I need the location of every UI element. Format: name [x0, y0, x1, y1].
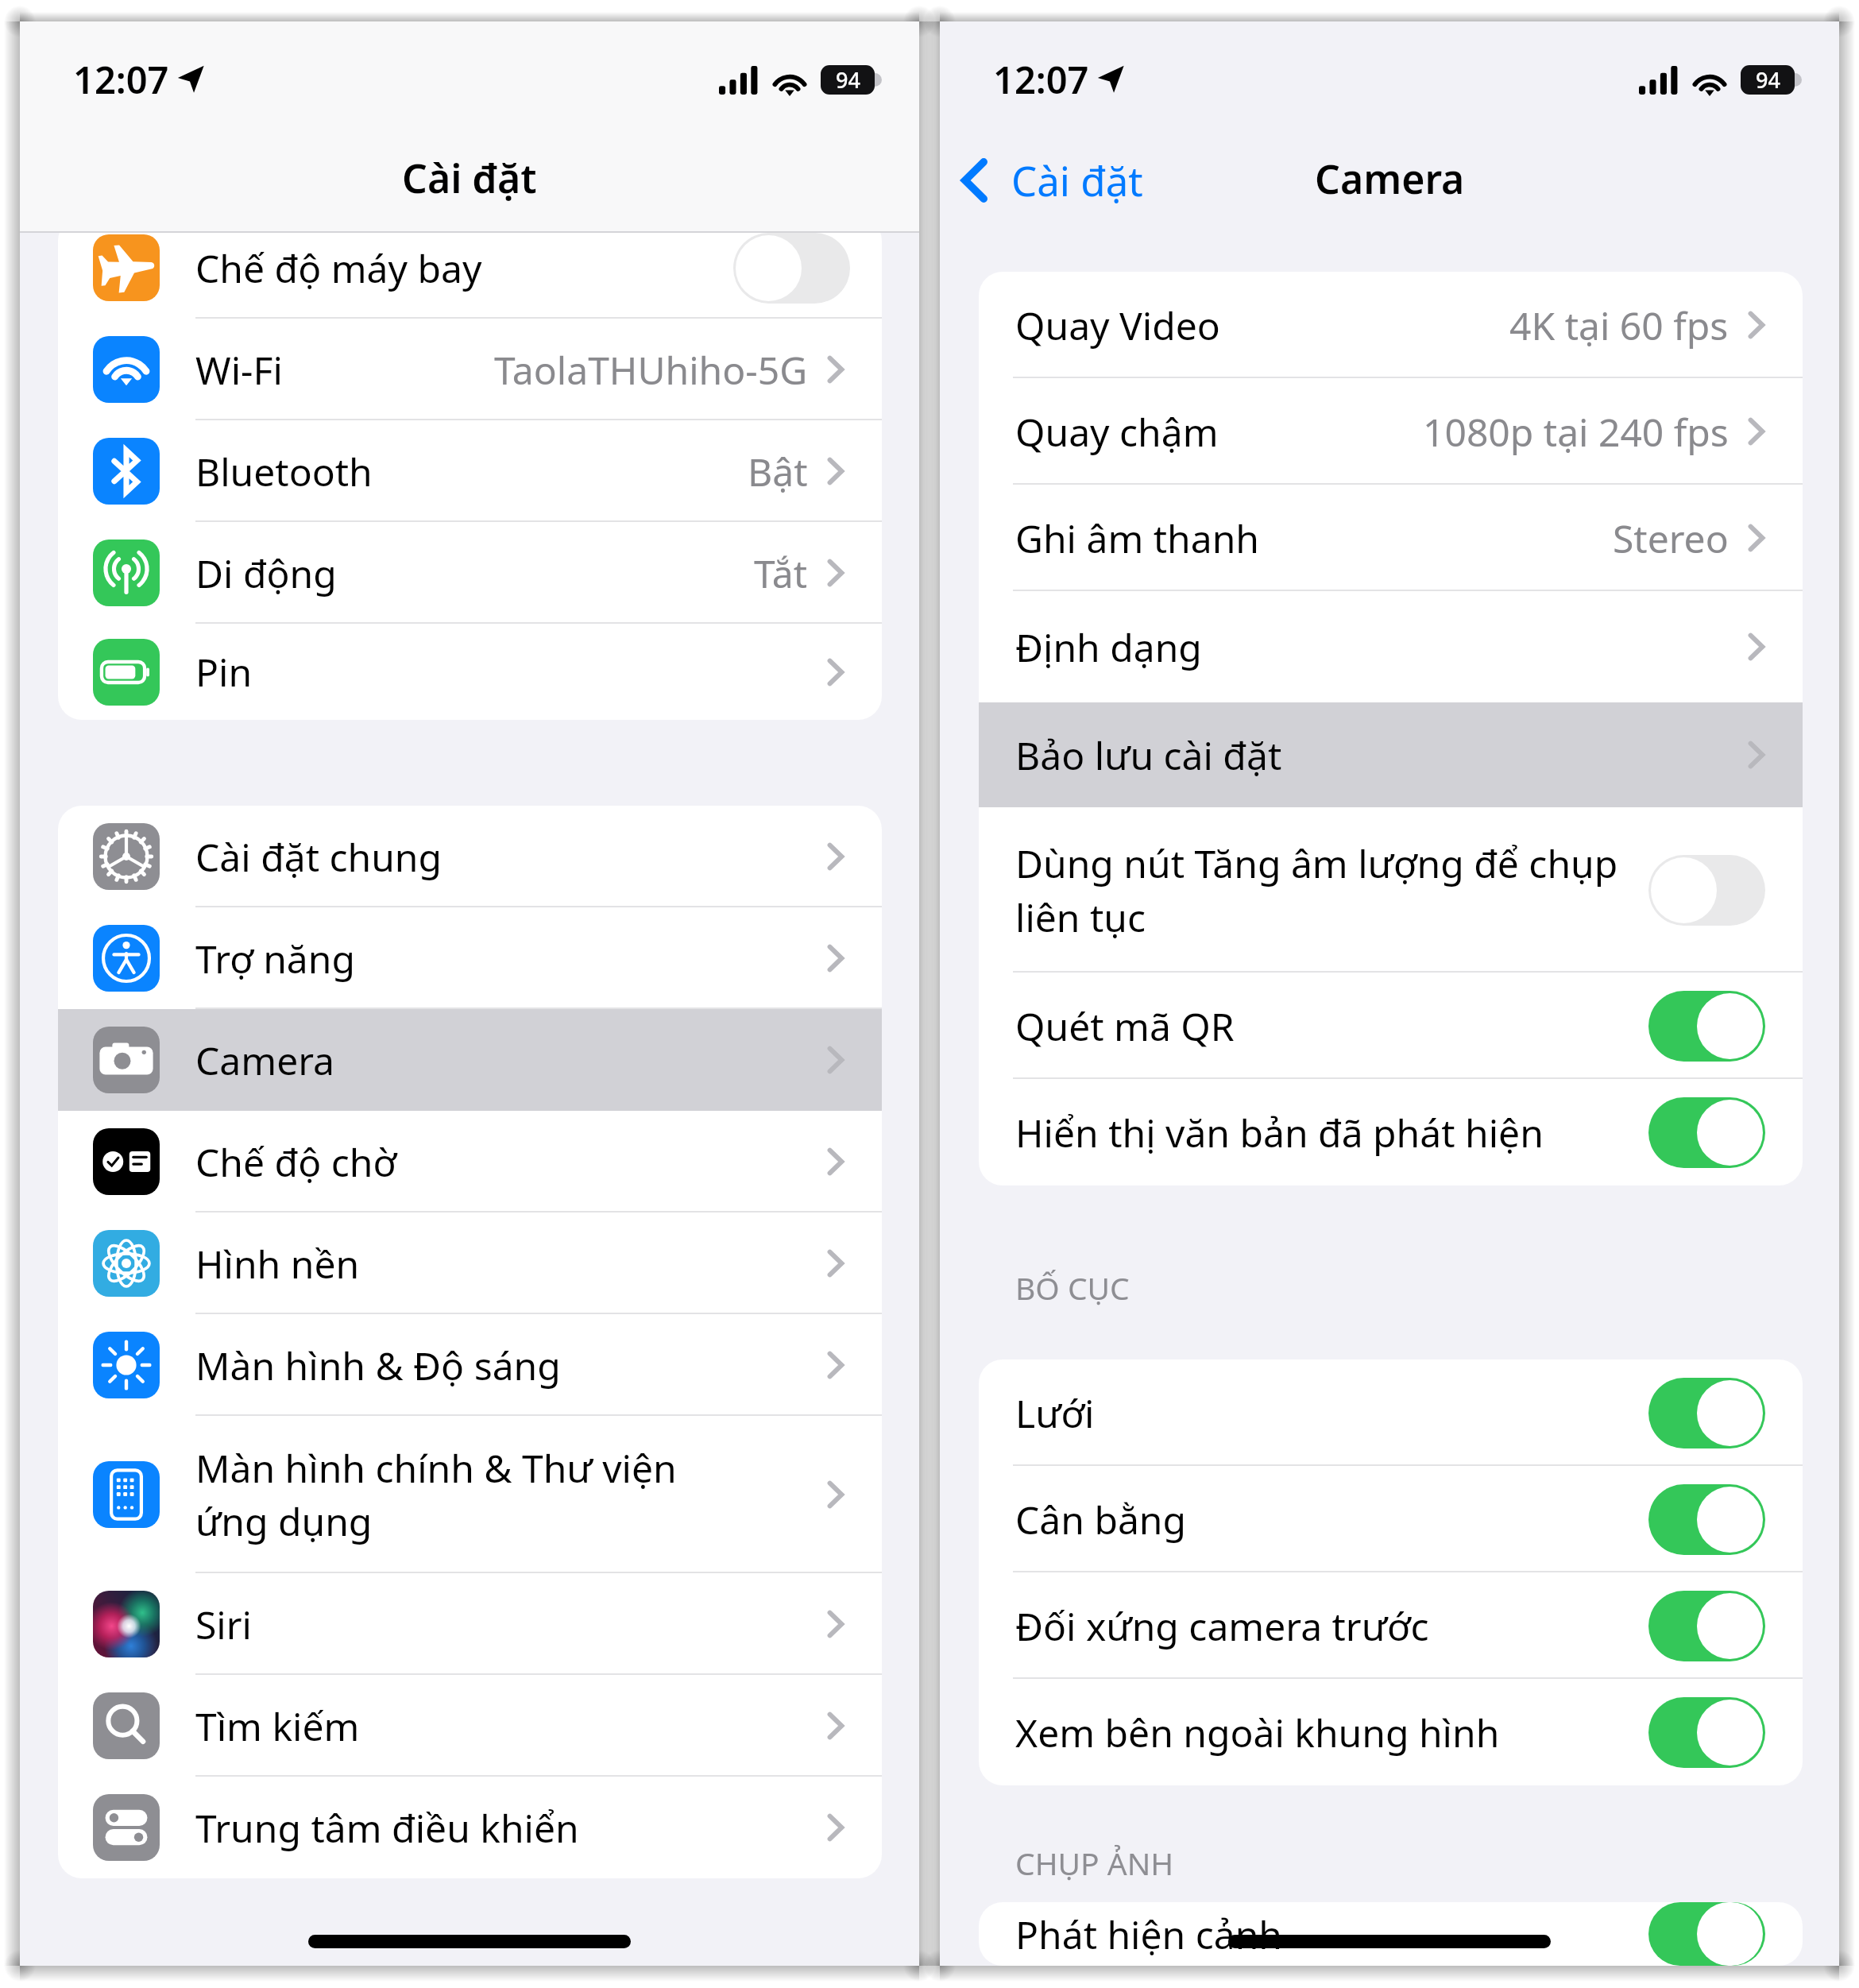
button[interactable]: Bluetooth: [58, 420, 882, 522]
staticText: Đối xứng camera trước: [1015, 1600, 1429, 1652]
button[interactable]: On: [1648, 1484, 1765, 1555]
button[interactable]: On: [1648, 1097, 1765, 1168]
staticText: Chế độ chờ: [195, 1136, 396, 1188]
button[interactable]: Di động: [58, 522, 882, 624]
staticText: Di động: [195, 547, 337, 599]
staticText: Bật: [748, 446, 808, 497]
staticText: Tìm kiếm: [195, 1700, 360, 1752]
staticText: Định dạng: [1015, 621, 1202, 673]
staticText: 12:07: [993, 54, 1089, 105]
button[interactable]: Trợ năng: [58, 907, 882, 1009]
button[interactable]: On: [1648, 1697, 1765, 1768]
staticText: Bảo lưu cài đặt: [1015, 729, 1282, 781]
staticText: Quét mã QR: [1015, 1000, 1235, 1052]
staticText: TaolaTHUhiho-5G: [494, 344, 808, 396]
staticText: Quay Video: [1015, 300, 1220, 351]
button[interactable]: Pin: [58, 624, 882, 720]
staticText: 12:07: [73, 54, 169, 105]
staticText: Màn hình chính & Thư viện ứng dụng: [195, 1442, 677, 1547]
staticText: BỐ CỤC: [1015, 1267, 1130, 1309]
staticText: Lưới: [1015, 1387, 1095, 1439]
staticText: Chế độ máy bay: [195, 242, 482, 294]
staticText: Quay chậm: [1015, 406, 1219, 458]
staticText: Bluetooth: [195, 446, 373, 497]
button[interactable]: Quét mã QR: [979, 973, 1803, 1079]
button[interactable]: Wi-Fi: [58, 319, 882, 420]
staticText: Màn hình & Độ sáng: [195, 1340, 561, 1391]
staticText: Cài đặt: [402, 151, 537, 205]
button[interactable]: Chế độ chờ: [58, 1111, 882, 1213]
button[interactable]: Quay chậm: [979, 378, 1803, 485]
staticText: Pin: [195, 646, 253, 698]
button[interactable]: Back to Cài đặt: [940, 145, 1151, 215]
button[interactable]: Màn hình & Độ sáng: [58, 1314, 882, 1416]
staticText: Camera: [195, 1035, 335, 1086]
button[interactable]: Trung tâm điều khiển: [58, 1777, 882, 1878]
button[interactable]: Hiển thị văn bản đã phát hiện: [979, 1079, 1803, 1185]
staticText: CHỤP ẢNH: [1015, 1842, 1174, 1884]
button[interactable]: Quay Video: [979, 272, 1803, 378]
button[interactable]: Đối xứng camera trước: [979, 1572, 1803, 1679]
staticText: Phát hiện cảnh: [1015, 1909, 1283, 1960]
staticText: Camera: [1315, 152, 1465, 206]
staticText: 94: [1756, 65, 1780, 95]
button[interactable]: Camera: [58, 1009, 882, 1111]
button[interactable]: Bảo lưu cài đặt: [979, 702, 1803, 807]
button[interactable]: Chế độ máy bay: [58, 217, 882, 319]
button[interactable]: Định dạng: [979, 591, 1803, 702]
button[interactable]: Cân bằng: [979, 1466, 1803, 1572]
button[interactable]: On: [1648, 991, 1765, 1062]
button[interactable]: Siri: [58, 1573, 882, 1675]
button[interactable]: Off: [1648, 855, 1765, 926]
staticText: Hình nền: [195, 1238, 360, 1290]
button[interactable]: Dùng nút Tăng âm lượng để chụp liên tục: [979, 807, 1803, 973]
staticText: Cài đặt chung: [195, 831, 443, 883]
staticText: Dùng nút Tăng âm lượng để chụp liên tục: [1015, 837, 1618, 943]
button[interactable]: Cài đặt chung: [58, 806, 882, 907]
button[interactable]: Phát hiện cảnh: [979, 1902, 1803, 1966]
staticText: 1080p tại 240 fps: [1423, 406, 1729, 458]
staticText: Cài đặt: [1011, 153, 1143, 207]
staticText: Tắt: [754, 547, 808, 599]
staticText: 94: [836, 65, 860, 95]
staticText: Trung tâm điều khiển: [195, 1802, 579, 1854]
staticText: 4K tại 60 fps: [1509, 300, 1729, 351]
button[interactable]: Màn hình chính & Thư viện ứng dụng: [58, 1416, 882, 1573]
staticText: Xem bên ngoài khung hình: [1015, 1707, 1500, 1758]
button[interactable]: Tìm kiếm: [58, 1675, 882, 1777]
button[interactable]: On: [1648, 1378, 1765, 1448]
button[interactable]: On: [1648, 1902, 1765, 1966]
button[interactable]: Hình nền: [58, 1213, 882, 1314]
button[interactable]: Ghi âm thanh: [979, 485, 1803, 591]
button[interactable]: Lưới: [979, 1359, 1803, 1466]
staticText: Hiển thị văn bản đã phát hiện: [1015, 1107, 1544, 1158]
staticText: Ghi âm thanh: [1015, 512, 1260, 564]
staticText: Wi-Fi: [195, 344, 283, 396]
button[interactable]: On: [1648, 1591, 1765, 1661]
staticText: Cân bằng: [1015, 1494, 1187, 1545]
staticText: Trợ năng: [195, 933, 355, 984]
button[interactable]: Xem bên ngoài khung hình: [979, 1679, 1803, 1785]
staticText: Siri: [195, 1599, 252, 1650]
staticText: Stereo: [1613, 512, 1729, 564]
button[interactable]: Off: [733, 233, 850, 304]
